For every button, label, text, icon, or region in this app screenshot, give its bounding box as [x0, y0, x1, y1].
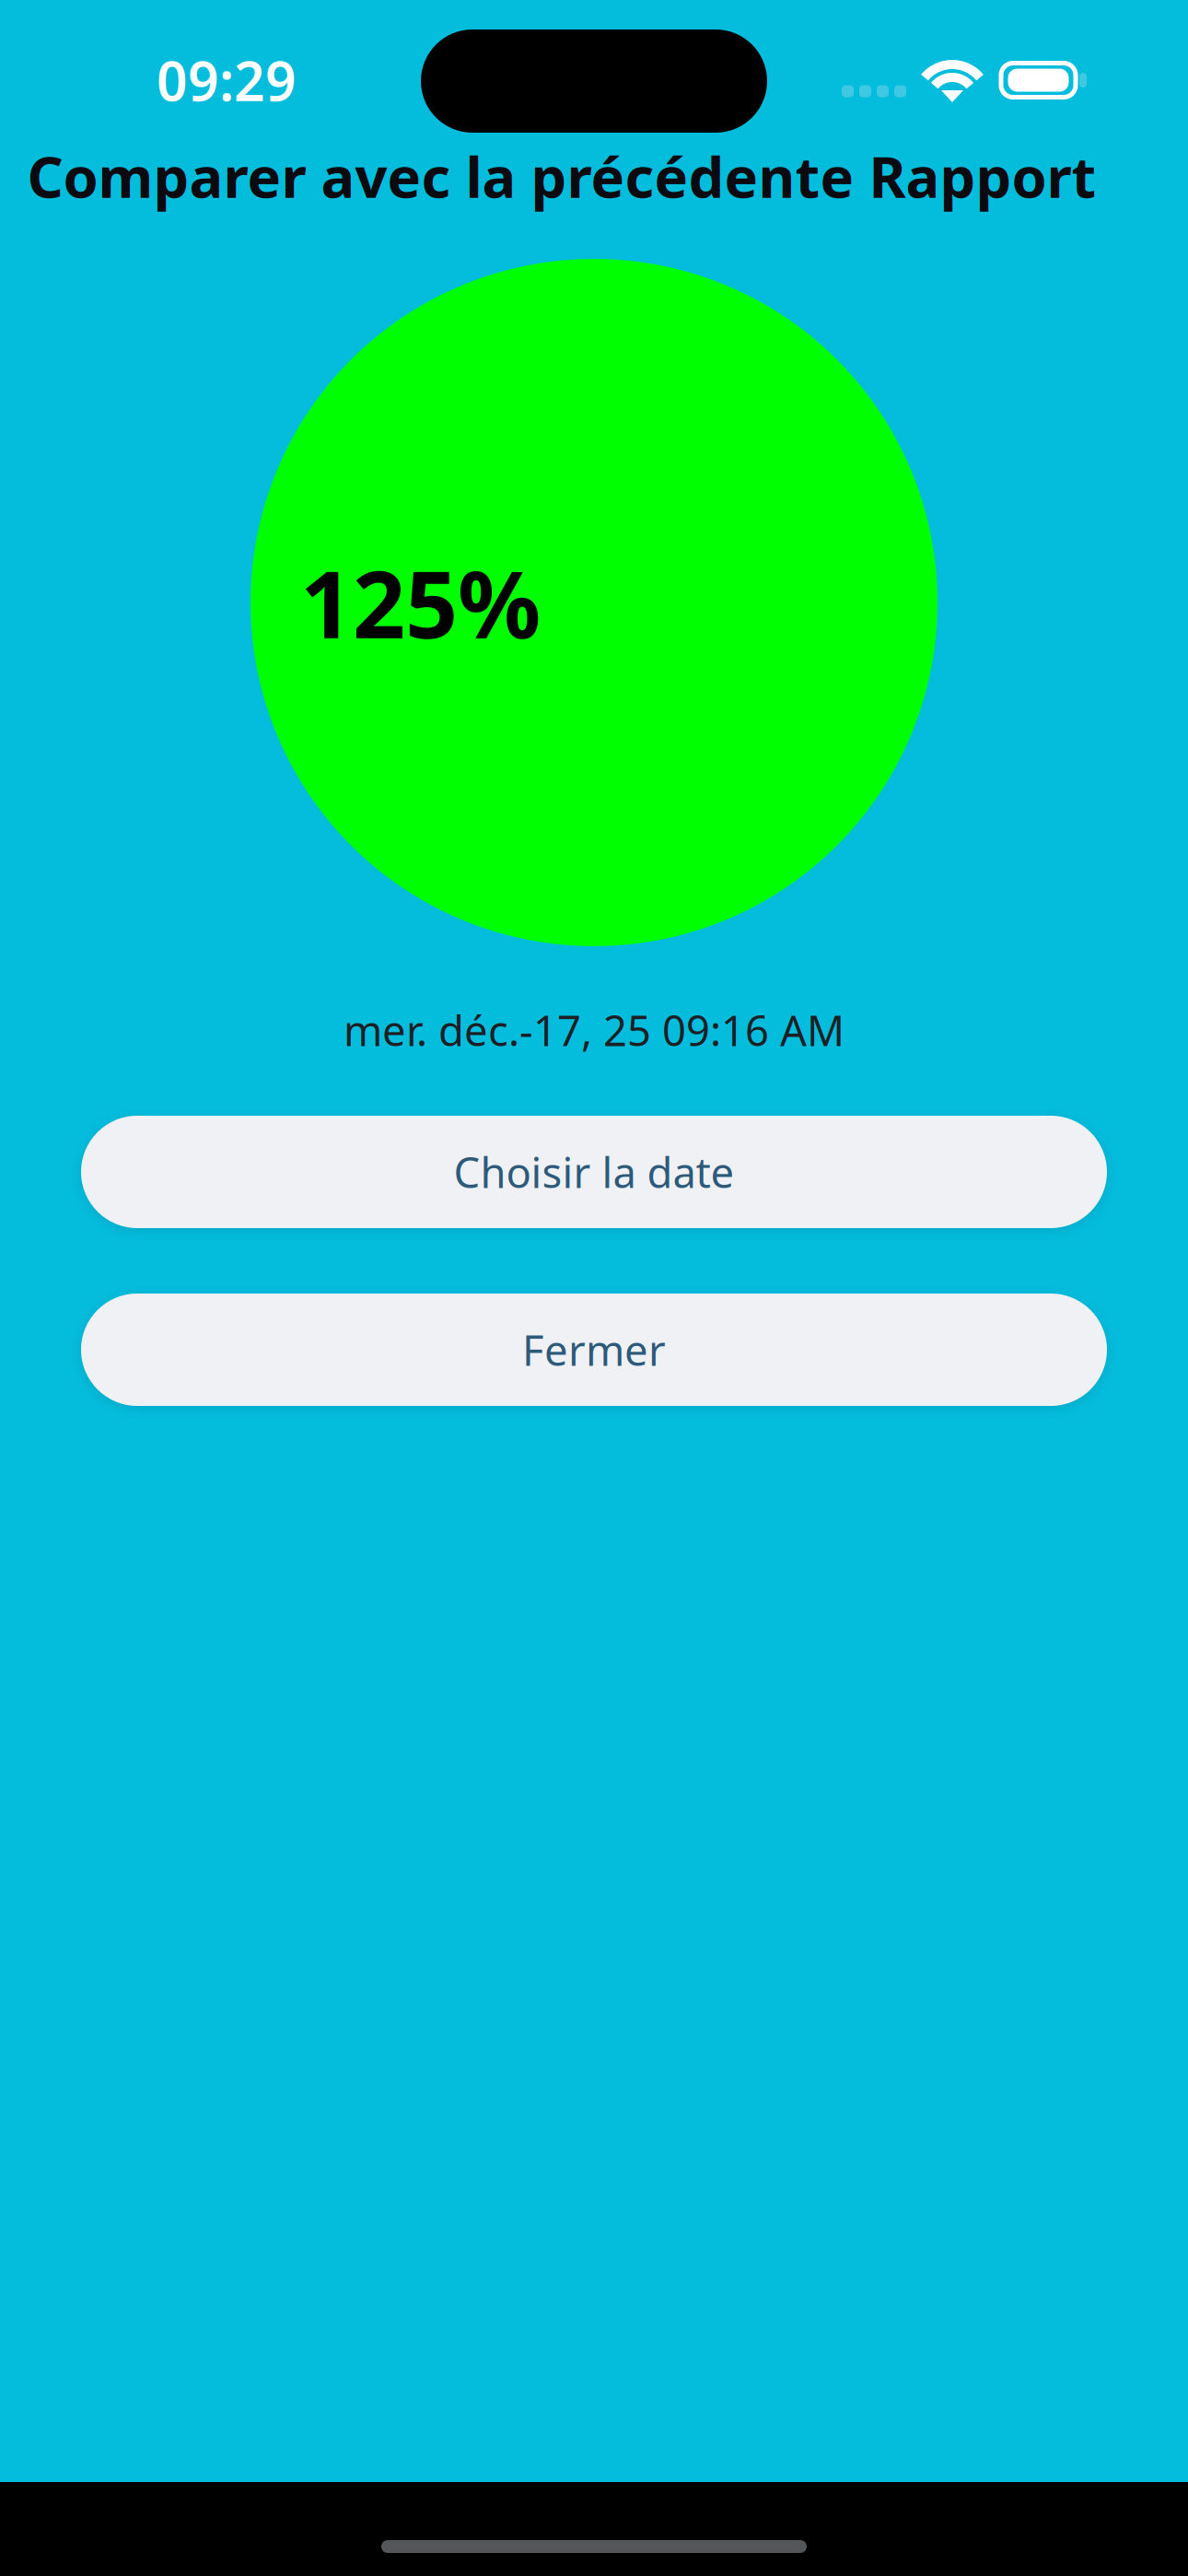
button[interactable]: Choisir la date — [81, 1116, 1107, 1228]
staticText: Choisir la date — [454, 1144, 734, 1200]
staticText: Comparer avec la précédente Rapport — [27, 138, 1096, 213]
staticText: mer. déc.-17, 25 09:16 AM — [344, 1002, 844, 1058]
button[interactable]: Fermer — [81, 1294, 1107, 1406]
staticText: 125% — [300, 541, 541, 664]
staticText: Fermer — [522, 1322, 666, 1377]
staticText: 09:29 — [157, 44, 297, 116]
